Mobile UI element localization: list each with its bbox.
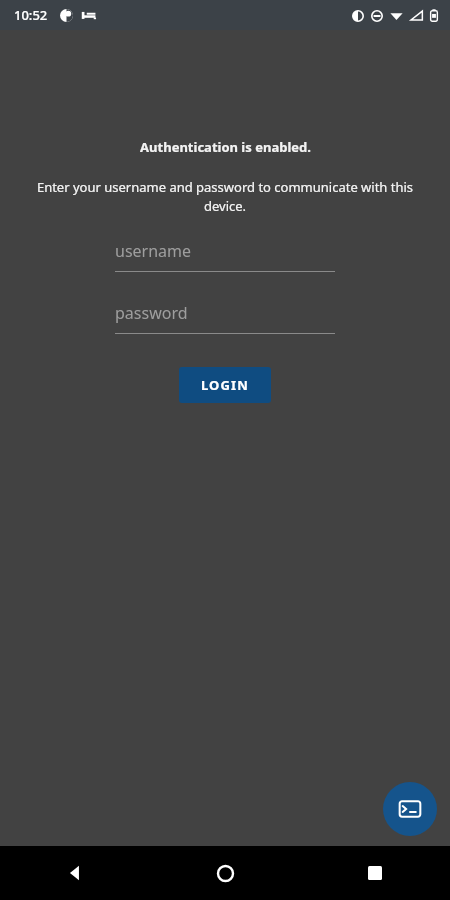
staticText: Enter your username and password to comm…	[16, 178, 434, 215]
staticText: LOGIN	[201, 376, 249, 394]
staticText: 10:52	[14, 6, 48, 24]
button[interactable]: Home	[150, 846, 300, 900]
staticText: password	[115, 302, 188, 324]
button[interactable]: Back	[0, 846, 150, 900]
button[interactable]: Open terminal	[383, 782, 437, 836]
button[interactable]: Recent apps	[300, 846, 450, 900]
staticText: Authentication is enabled.	[140, 138, 311, 156]
button[interactable]: password	[115, 300, 335, 334]
button[interactable]: LOGIN	[179, 367, 271, 403]
button[interactable]: username	[115, 238, 335, 272]
staticText: username	[115, 240, 192, 262]
